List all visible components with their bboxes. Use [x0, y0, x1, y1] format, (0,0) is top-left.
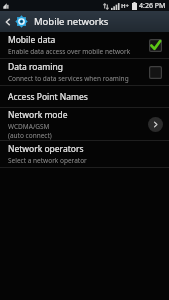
staticText: Data roaming: [8, 61, 63, 73]
staticText: Select a network operator: [8, 156, 87, 165]
button[interactable]: Network operators: [0, 141, 169, 167]
staticText: Network mode: [8, 109, 68, 121]
button[interactable]: Back: [0, 11, 15, 32]
staticText: Connect to data services when roaming: [8, 74, 129, 83]
staticText: Enable data access over mobile network: [8, 47, 131, 56]
button[interactable]: Mobile data: [0, 32, 169, 58]
button[interactable]: Access Point Names: [0, 86, 169, 107]
staticText: Mobile networks: [34, 15, 109, 28]
staticText: 4:26 PM: [139, 1, 166, 11]
staticText: (auto connect): [8, 131, 52, 140]
button[interactable]: Data roaming: [0, 59, 169, 85]
button[interactable]: Disabled: [147, 64, 163, 80]
button[interactable]: Enabled: [147, 37, 163, 53]
staticText: Mobile data: [8, 34, 56, 46]
staticText: Access Point Names: [8, 91, 88, 103]
button[interactable]: Select network mode: [148, 117, 163, 132]
button[interactable]: Network mode: [0, 108, 169, 140]
staticText: Network operators: [8, 143, 84, 155]
staticText: H+: [121, 2, 130, 10]
staticText: WCDMA/GSM: [8, 122, 50, 131]
